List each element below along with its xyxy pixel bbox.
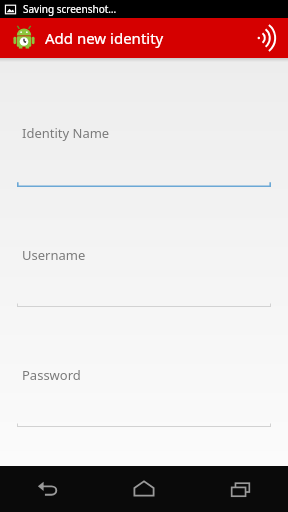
- button[interactable]: Password: [0, 308, 288, 428]
- button[interactable]: App icon: [11, 25, 37, 51]
- button[interactable]: Broadcast NFC: [246, 18, 286, 58]
- staticText: Add new identity: [45, 28, 164, 48]
- staticText: Password: [22, 366, 81, 384]
- staticText: Identity Name: [22, 124, 110, 142]
- button[interactable]: Back: [0, 466, 96, 512]
- button[interactable]: Identity Name: [0, 58, 288, 188]
- staticText: Username: [22, 246, 86, 264]
- staticText: Saving screenshot…: [23, 2, 117, 16]
- button[interactable]: Recent apps: [192, 466, 288, 512]
- button[interactable]: Home: [96, 466, 192, 512]
- button[interactable]: Username: [0, 188, 288, 308]
